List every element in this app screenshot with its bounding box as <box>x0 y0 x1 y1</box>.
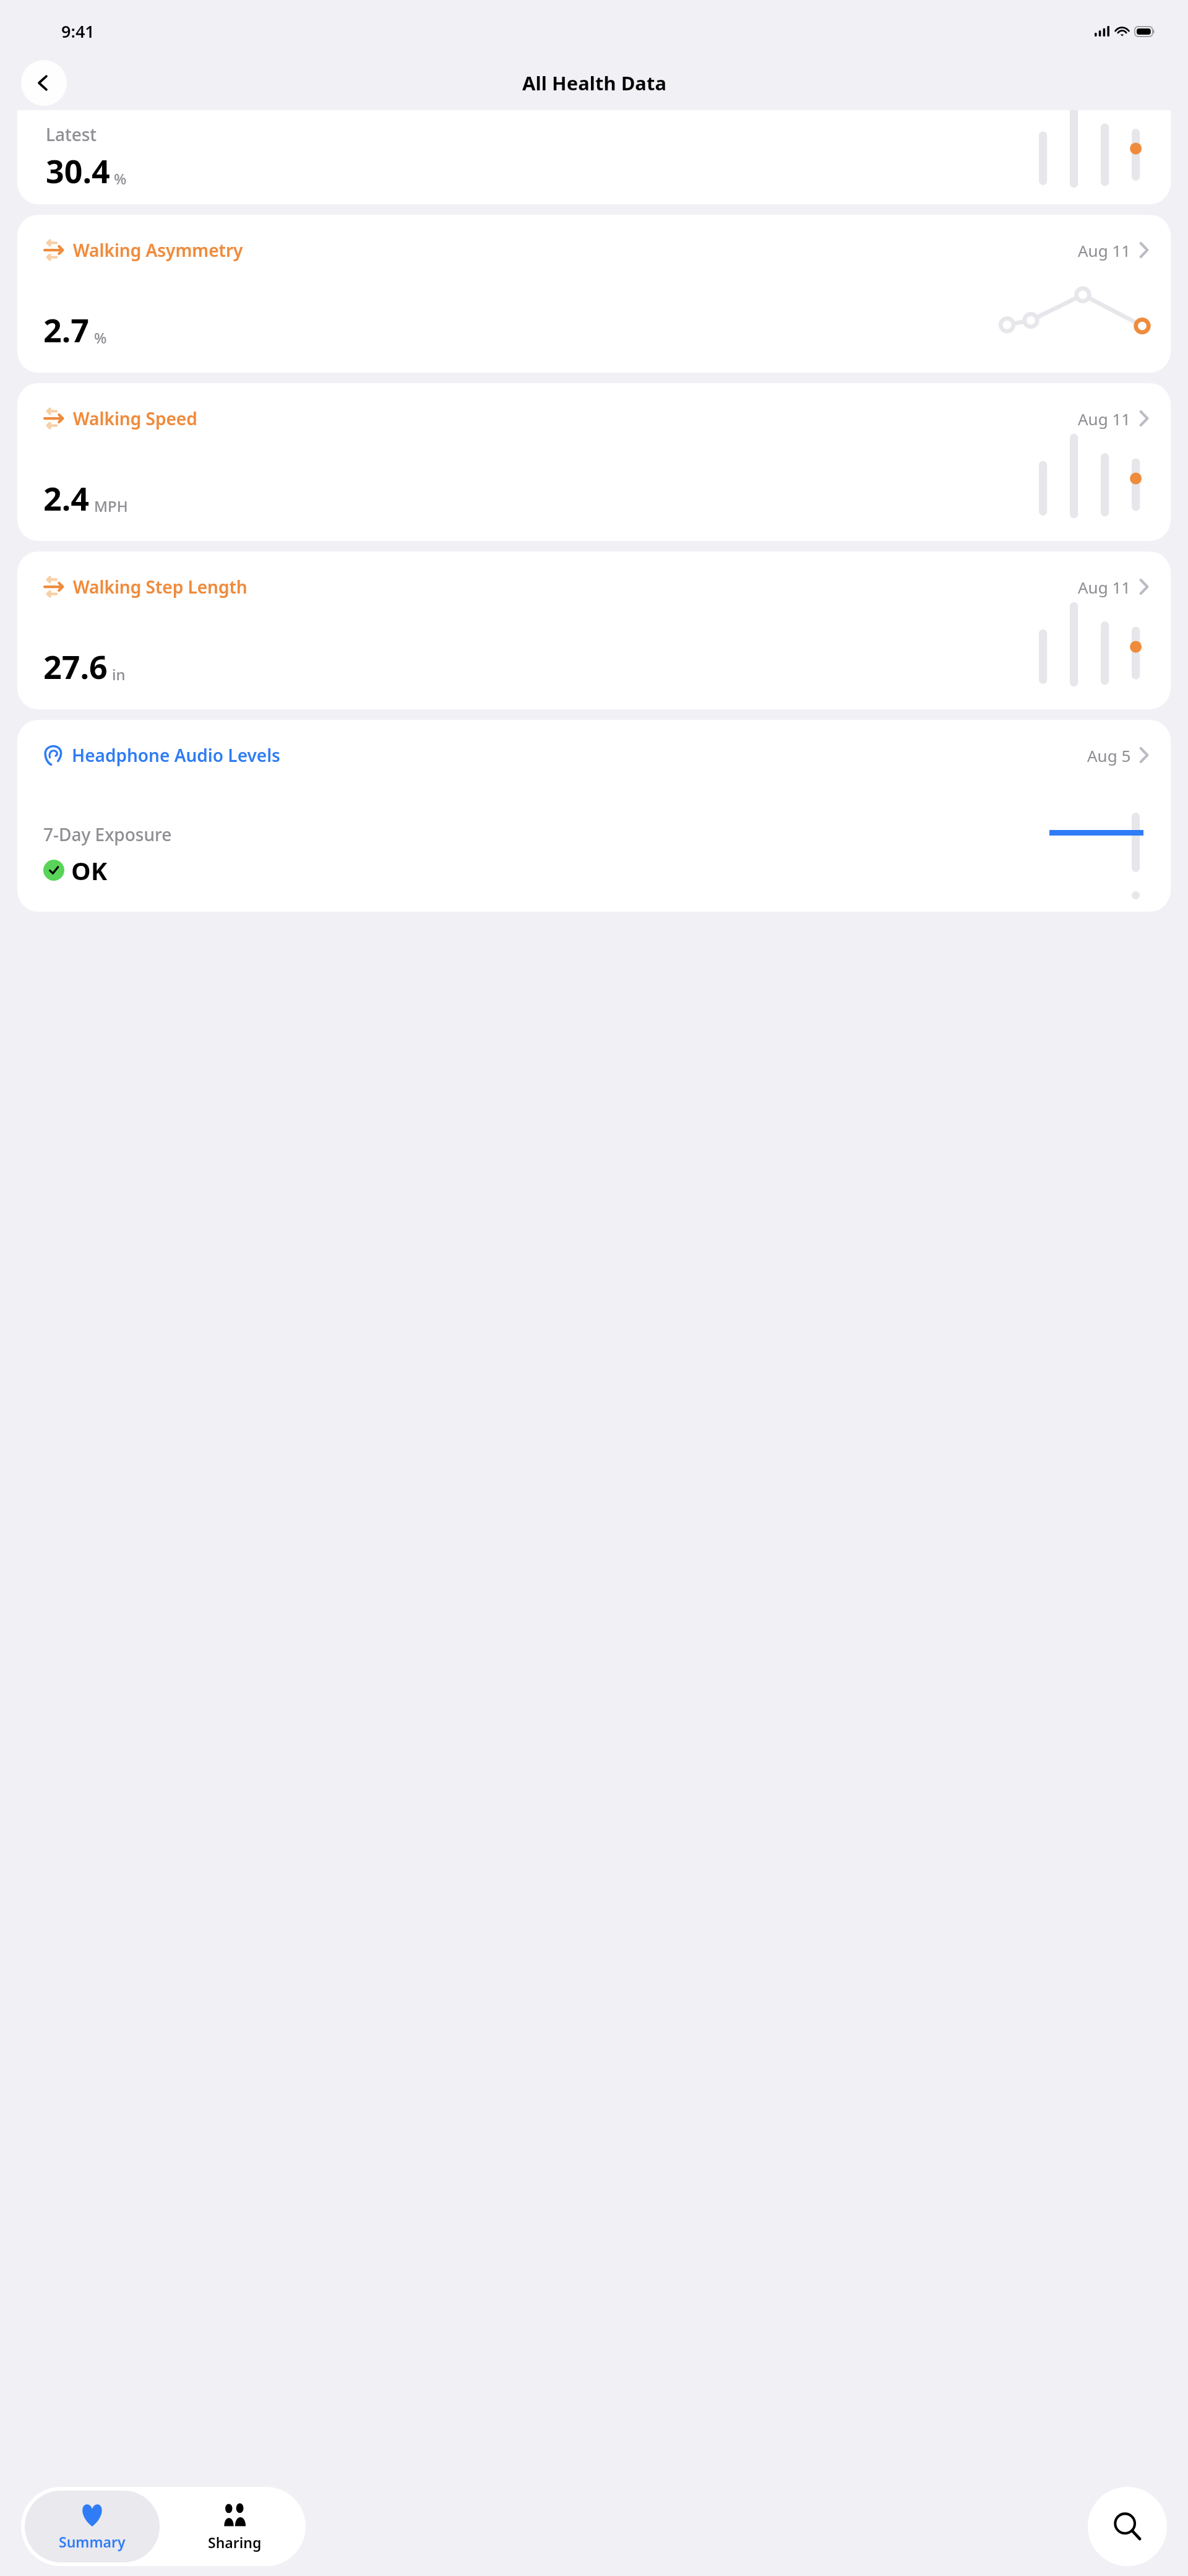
staticText: 30.4 <box>46 149 110 192</box>
staticText: 27.6 <box>43 644 108 688</box>
staticText: Latest <box>46 123 97 146</box>
button[interactable]: Back <box>21 60 67 106</box>
button[interactable]: Latest <box>17 110 1171 204</box>
staticText: Headphone Audio Levels <box>72 743 280 767</box>
staticText: Walking Step Length <box>73 575 247 599</box>
staticText: OK <box>71 854 108 887</box>
button[interactable]: Search <box>1088 2487 1167 2566</box>
staticText: Sharing <box>208 2533 262 2552</box>
button[interactable]: Walking Speed <box>17 383 1171 541</box>
staticText: Aug 11 <box>1078 240 1131 261</box>
button[interactable]: Headphone Audio Levels <box>17 720 1171 912</box>
button[interactable]: Walking Asymmetry <box>17 215 1171 373</box>
staticText: Aug 11 <box>1078 576 1131 598</box>
staticText: All Health Data <box>522 70 666 96</box>
staticText: Summary <box>59 2532 126 2551</box>
staticText: MPH <box>94 496 128 516</box>
staticText: Aug 5 <box>1087 745 1131 766</box>
button[interactable]: Summary <box>25 2491 160 2562</box>
staticText: % <box>94 327 107 348</box>
staticText: 2.7 <box>43 308 90 352</box>
button[interactable]: Walking Step Length <box>17 551 1171 709</box>
staticText: in <box>112 664 126 685</box>
staticText: 2.4 <box>43 476 90 520</box>
staticText: 9:41 <box>61 20 95 43</box>
staticText: 7-Day Exposure <box>43 823 172 846</box>
staticText: Walking Asymmetry <box>73 238 243 262</box>
staticText: Walking Speed <box>73 407 197 430</box>
staticText: Aug 11 <box>1078 408 1131 430</box>
button[interactable]: Sharing <box>163 2487 306 2566</box>
staticText: % <box>114 168 127 189</box>
